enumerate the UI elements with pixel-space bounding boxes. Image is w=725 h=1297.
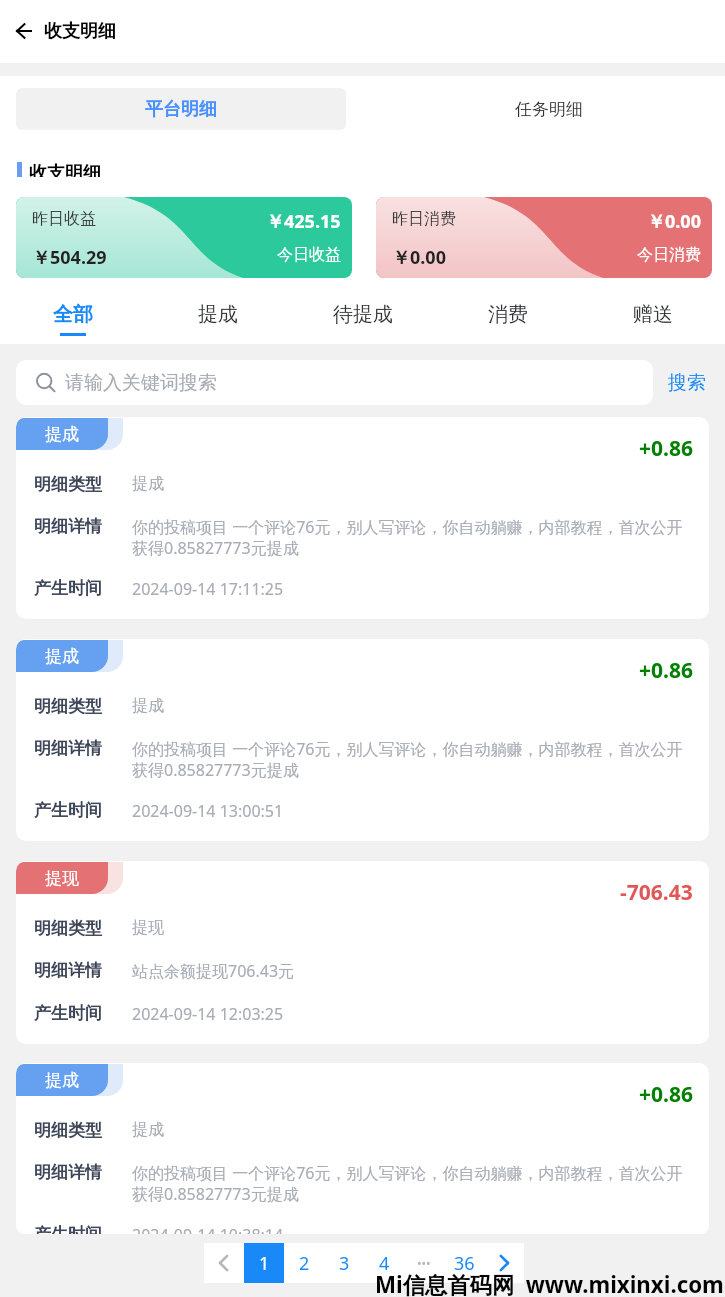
- staticText: 3: [339, 1251, 350, 1276]
- staticText: 明细类型: [34, 1120, 132, 1141]
- staticText: 明细类型: [34, 696, 132, 717]
- staticText: 产生时间: [34, 1224, 132, 1235]
- staticText: 提成: [45, 1070, 79, 1091]
- staticText: 昨日消费: [392, 209, 456, 229]
- staticText: 提成: [132, 696, 164, 716]
- staticText: 全部: [53, 302, 93, 327]
- staticText: 2024-09-14 13:00:51: [132, 800, 284, 822]
- button[interactable]: 昨日收益: [16, 197, 352, 278]
- staticText: •••: [417, 1255, 431, 1271]
- button[interactable]: Previous page: [204, 1243, 244, 1283]
- staticText: 你的投稿项目 一个评论76元，别人写评论，你自动躺赚，内部教程，首次公开获得0.…: [132, 516, 691, 559]
- staticText: 提成: [132, 1120, 164, 1140]
- staticText: 今日消费: [637, 245, 701, 265]
- button[interactable]: 36: [444, 1243, 484, 1283]
- button[interactable]: 任务明细: [346, 88, 725, 130]
- staticText: 你的投稿项目 一个评论76元，别人写评论，你自动躺赚，内部教程，首次公开获得0.…: [132, 1162, 691, 1205]
- staticText: 明细详情: [34, 738, 132, 759]
- button[interactable]: 提现: [16, 861, 709, 1044]
- button[interactable]: 消费: [435, 278, 580, 344]
- staticText: ￥0.00: [647, 209, 701, 234]
- button[interactable]: 赠送: [580, 278, 725, 344]
- staticText: 平台明细: [145, 98, 217, 121]
- staticText: 明细详情: [34, 1162, 132, 1183]
- staticText: 请输入关键词搜索: [65, 371, 217, 395]
- staticText: 提成: [198, 302, 238, 327]
- staticText: 你的投稿项目 一个评论76元，别人写评论，你自动躺赚，内部教程，首次公开获得0.…: [132, 738, 691, 781]
- staticText: 提现: [132, 918, 164, 938]
- button[interactable]: 3: [324, 1243, 364, 1283]
- staticText: 今日收益: [277, 245, 341, 265]
- staticText: 提成: [45, 646, 79, 667]
- staticText: 明细类型: [34, 474, 132, 495]
- staticText: +0.86: [639, 434, 693, 463]
- staticText: ￥425.15: [266, 209, 341, 234]
- staticText: ￥504.29: [32, 245, 107, 270]
- staticText: 1: [259, 1251, 270, 1276]
- staticText: 收支明细: [29, 162, 101, 177]
- button[interactable]: 2: [284, 1243, 324, 1283]
- staticText: +0.86: [639, 1080, 693, 1109]
- button[interactable]: Next page: [484, 1243, 524, 1283]
- staticText: 明细类型: [34, 918, 132, 939]
- button[interactable]: 平台明细: [16, 88, 346, 130]
- staticText: 2: [299, 1251, 310, 1276]
- staticText: 站点余额提现706.43元: [132, 960, 295, 982]
- button[interactable]: 提成: [16, 417, 709, 619]
- button[interactable]: 昨日消费: [376, 197, 712, 278]
- staticText: 2024-09-14 12:03:25: [132, 1003, 284, 1025]
- staticText: 待提成: [333, 302, 393, 327]
- button[interactable]: 提成: [16, 1063, 709, 1235]
- button[interactable]: 搜索: [653, 360, 706, 405]
- staticText: 产生时间: [34, 1003, 132, 1024]
- button[interactable]: 提成: [145, 278, 290, 344]
- staticText: 消费: [488, 302, 528, 327]
- staticText: 明细详情: [34, 516, 132, 537]
- button[interactable]: •••: [404, 1243, 444, 1283]
- staticText: 提成: [45, 424, 79, 445]
- button[interactable]: 提成: [16, 639, 709, 841]
- staticText: 产生时间: [34, 578, 132, 599]
- staticText: 36: [454, 1251, 475, 1276]
- button[interactable]: 1: [244, 1243, 284, 1283]
- staticText: 产生时间: [34, 800, 132, 821]
- staticText: 提成: [132, 474, 164, 494]
- button[interactable]: 4: [364, 1243, 404, 1283]
- staticText: 明细详情: [34, 960, 132, 981]
- button[interactable]: 待提成: [290, 278, 435, 344]
- staticText: 2024-09-14 17:11:25: [132, 578, 284, 600]
- staticText: 昨日收益: [32, 209, 96, 229]
- staticText: 提现: [45, 868, 79, 889]
- staticText: 4: [379, 1251, 390, 1276]
- staticText: 任务明细: [515, 99, 583, 120]
- staticText: Mi信息首码网 www.mixinxi.com: [375, 1269, 724, 1297]
- button[interactable]: Back: [7, 15, 41, 49]
- staticText: 搜索: [668, 371, 706, 395]
- button[interactable]: 请输入关键词搜索: [16, 360, 653, 405]
- staticText: +0.86: [639, 656, 693, 685]
- staticText: -706.43: [620, 878, 693, 907]
- staticText: ￥0.00: [392, 245, 446, 270]
- staticText: 2024-09-14 10:38:14: [132, 1224, 284, 1235]
- staticText: 收支明细: [44, 20, 116, 43]
- staticText: 赠送: [633, 302, 673, 327]
- button[interactable]: 全部: [0, 278, 145, 344]
